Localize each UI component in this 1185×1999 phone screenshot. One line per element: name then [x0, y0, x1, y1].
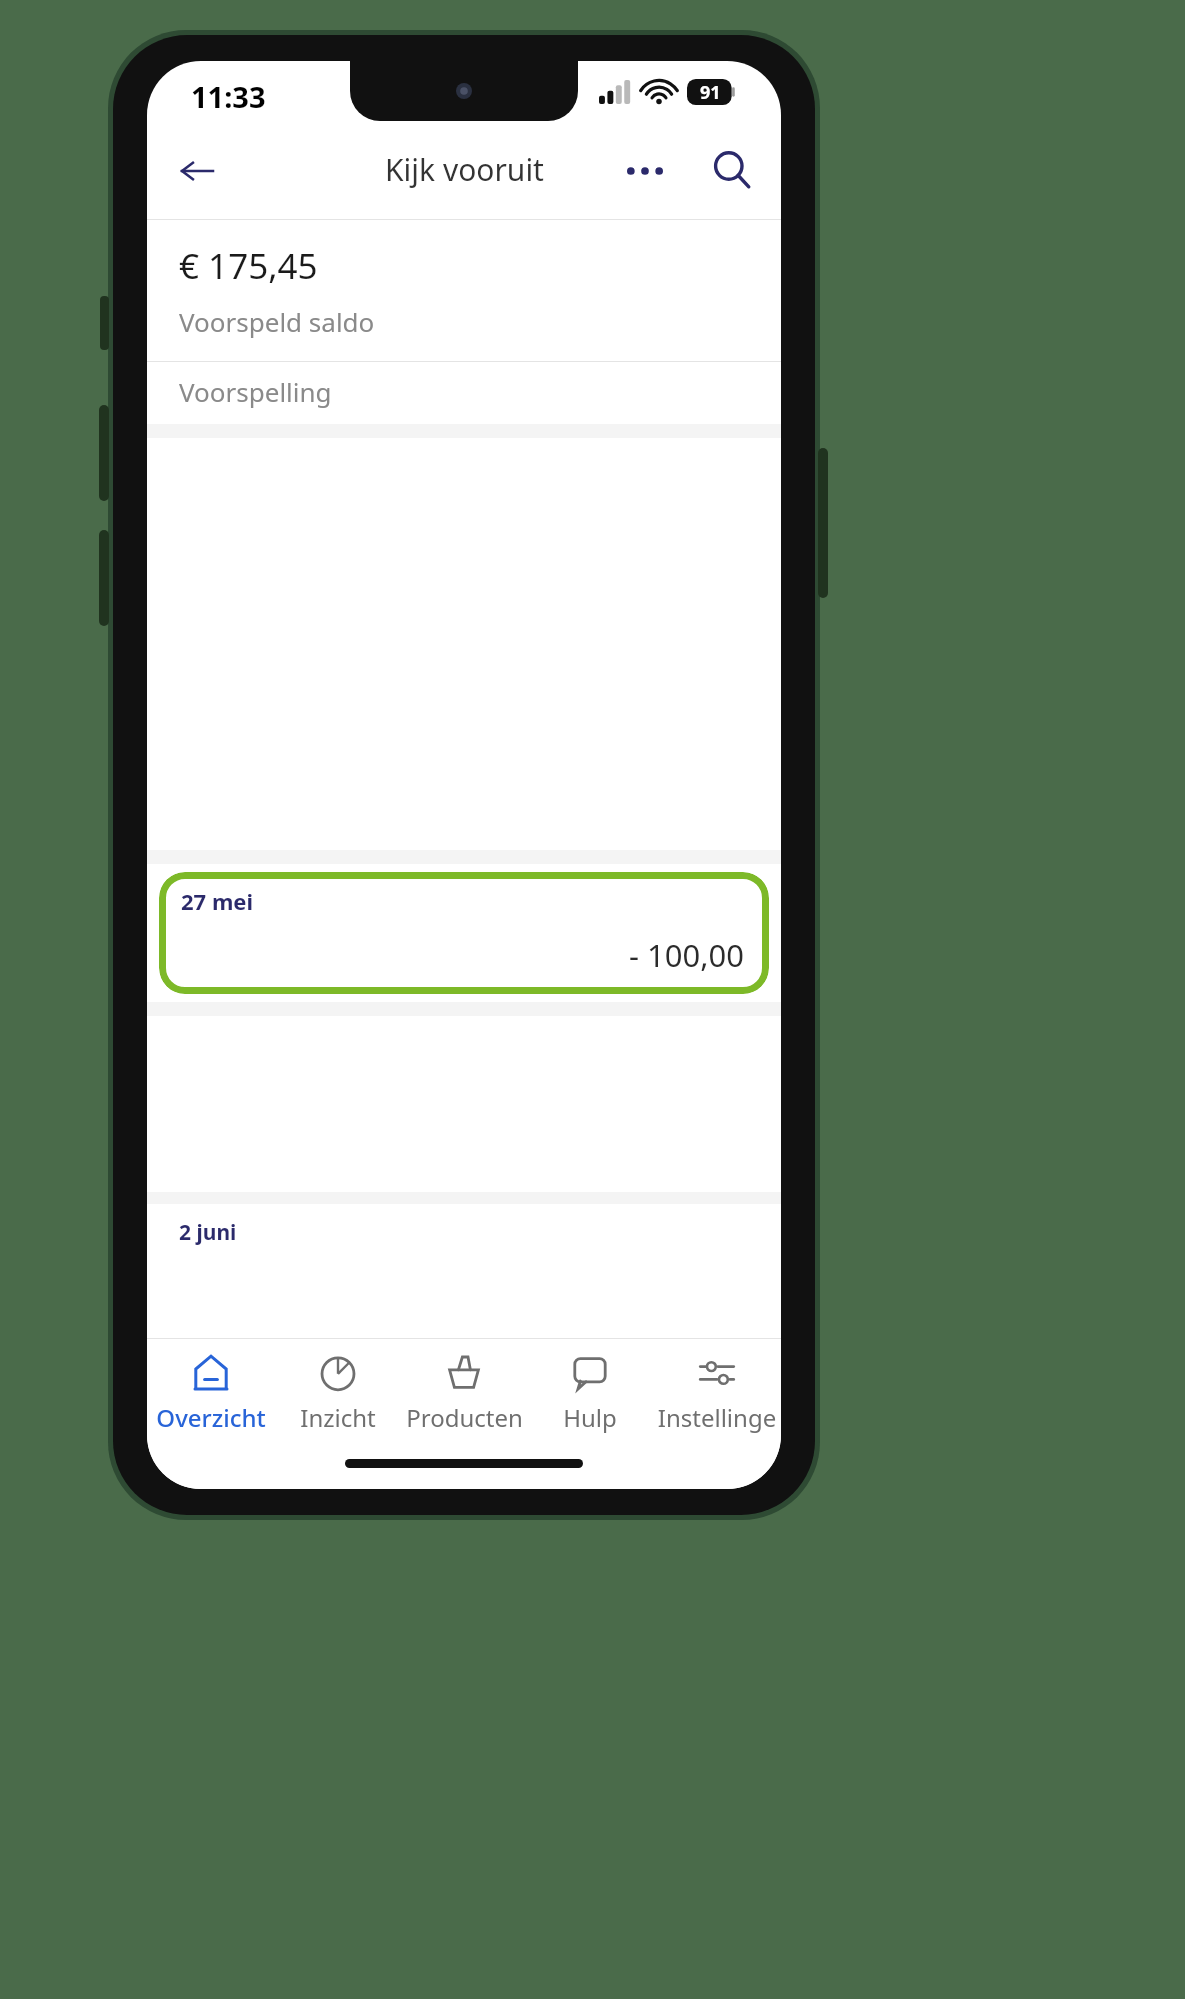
button[interactable]: Producten	[402, 1339, 526, 1445]
staticText: - 100,00	[629, 934, 745, 976]
staticText: € 175,45	[179, 242, 318, 290]
button[interactable]: 27 mei	[159, 872, 769, 994]
button[interactable]: Inzicht	[276, 1339, 400, 1445]
staticText: Kijk vooruit	[385, 149, 544, 190]
staticText: Inzicht	[300, 1401, 376, 1434]
staticText: Voorspeld saldo	[179, 304, 375, 339]
button[interactable]: Meer opties	[615, 141, 675, 201]
button[interactable]: Hulp	[528, 1339, 652, 1445]
staticText: 11:33	[191, 77, 266, 116]
staticText: Producten	[406, 1401, 523, 1434]
button[interactable]: Terug	[167, 141, 227, 201]
button[interactable]: Voorspelling	[147, 362, 781, 424]
staticText: Voorspelling	[179, 374, 332, 409]
staticText: 91	[700, 80, 721, 105]
staticText: Hulp	[563, 1401, 617, 1434]
staticText: 2 juni	[179, 1218, 237, 1247]
staticText: Overzicht	[156, 1401, 266, 1434]
staticText: 27 mei	[181, 886, 254, 916]
button[interactable]: € 175,45	[147, 220, 781, 361]
button[interactable]: Zoeken	[699, 137, 765, 203]
button[interactable]: Overzicht	[149, 1339, 273, 1445]
staticText: Instellingen	[655, 1401, 779, 1445]
button[interactable]: Instellingen	[655, 1339, 779, 1445]
